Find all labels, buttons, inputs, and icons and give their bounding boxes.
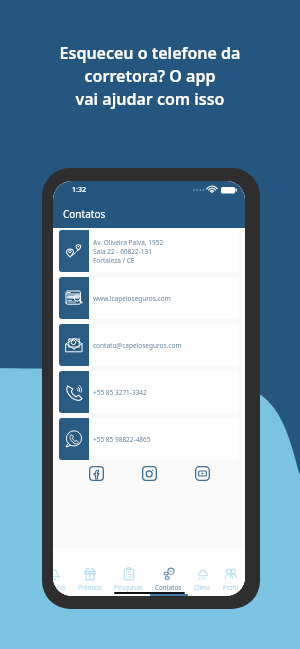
staticText: Seguros <box>53 583 66 591</box>
staticText: Contatos <box>155 583 182 591</box>
button[interactable]: contato@capeloseguros.com <box>59 324 239 366</box>
button[interactable]: Av. Oliveira Paiva, 1952 Sala 22 - 60822… <box>59 230 239 272</box>
button[interactable]: Prêmios <box>78 567 102 591</box>
staticText: Esqueceu o telefone da corretora? O app … <box>0 42 300 110</box>
button[interactable]: Seguros <box>53 567 66 591</box>
staticText: Clima <box>194 583 211 591</box>
staticText: Prêmios <box>78 583 102 591</box>
staticText: www.lcapeloseguros.com <box>93 294 171 303</box>
button[interactable]: Facebook <box>89 466 104 481</box>
staticText: contato@capeloseguros.com <box>93 341 182 350</box>
button[interactable]: +55 85 3271-3342 <box>59 371 239 413</box>
staticText: +55 85 3271-3342 <box>93 388 147 397</box>
staticText: Perfil <box>223 583 239 591</box>
button[interactable]: Contatos <box>155 567 182 591</box>
button[interactable]: www.lcapeloseguros.com <box>59 277 239 319</box>
staticText: Contatos <box>63 207 106 221</box>
button[interactable]: Instagram <box>142 466 157 481</box>
staticText: +55 85 98822-4865 <box>93 435 151 444</box>
button[interactable]: Clima <box>194 567 211 591</box>
button[interactable]: Perfil <box>223 567 239 591</box>
staticText: Pesquisas <box>114 583 143 591</box>
button[interactable]: YouTube <box>195 466 210 481</box>
button[interactable]: Pesquisas <box>114 567 143 591</box>
button[interactable]: +55 85 98822-4865 <box>59 418 239 460</box>
staticText: 1:32 <box>72 185 86 195</box>
staticText: Av. Oliveira Paiva, 1952 Sala 22 - 60822… <box>93 238 164 265</box>
